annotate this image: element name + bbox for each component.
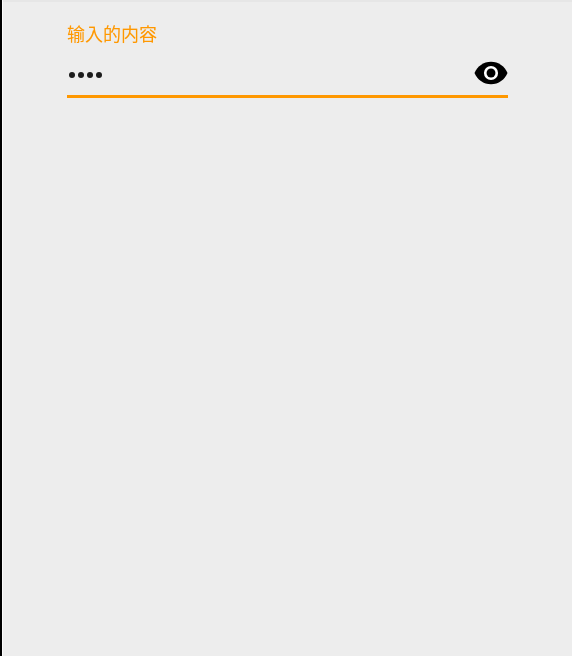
staticText: 输入的内容 — [67, 20, 157, 46]
button[interactable]: Toggle password visibility — [67, 52, 508, 98]
button[interactable]: Toggle password visibility — [473, 55, 509, 91]
